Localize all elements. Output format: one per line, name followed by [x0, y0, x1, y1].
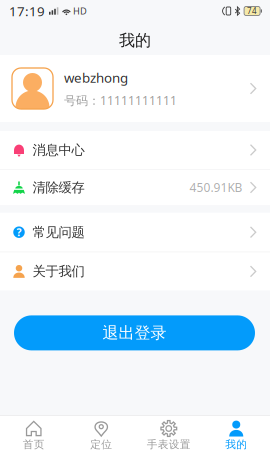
staticText: 450.91KB — [189, 179, 242, 195]
staticText: webzhong — [64, 69, 128, 86]
button[interactable]: 手表设置 — [135, 415, 202, 450]
staticText: 号码：11111111111 — [64, 92, 177, 108]
button[interactable]: 首页 — [0, 415, 67, 450]
staticText: 17:19 — [9, 2, 45, 20]
staticText: ? — [16, 225, 21, 239]
button[interactable]: webzhong — [0, 55, 270, 122]
button[interactable]: 定位 — [67, 415, 135, 450]
staticText: 首页 — [23, 438, 45, 450]
button[interactable]: 我的 — [202, 415, 270, 450]
staticText: 常见问题 — [32, 224, 84, 240]
staticText: 我的 — [119, 31, 151, 50]
button[interactable]: 关于我们 — [0, 252, 270, 290]
button[interactable]: 清除缓存 — [0, 170, 270, 205]
staticText: 消息中心 — [32, 142, 84, 158]
staticText: 手表设置 — [147, 438, 191, 450]
staticText: 定位 — [90, 438, 112, 450]
staticText: 退出登录 — [102, 323, 166, 343]
staticText: 74 — [247, 6, 257, 16]
staticText: HD — [73, 5, 87, 17]
button[interactable]: 退出登录 — [14, 315, 255, 350]
button[interactable]: 消息中心 — [0, 131, 270, 169]
staticText: 清除缓存 — [32, 179, 84, 196]
staticText: 我的 — [225, 438, 247, 450]
button[interactable]: ? — [0, 213, 270, 252]
staticText: 关于我们 — [32, 263, 84, 280]
